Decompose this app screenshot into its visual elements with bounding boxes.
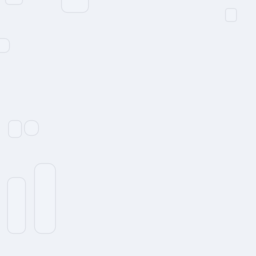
button[interactable]: Battery (225, 8, 236, 21)
